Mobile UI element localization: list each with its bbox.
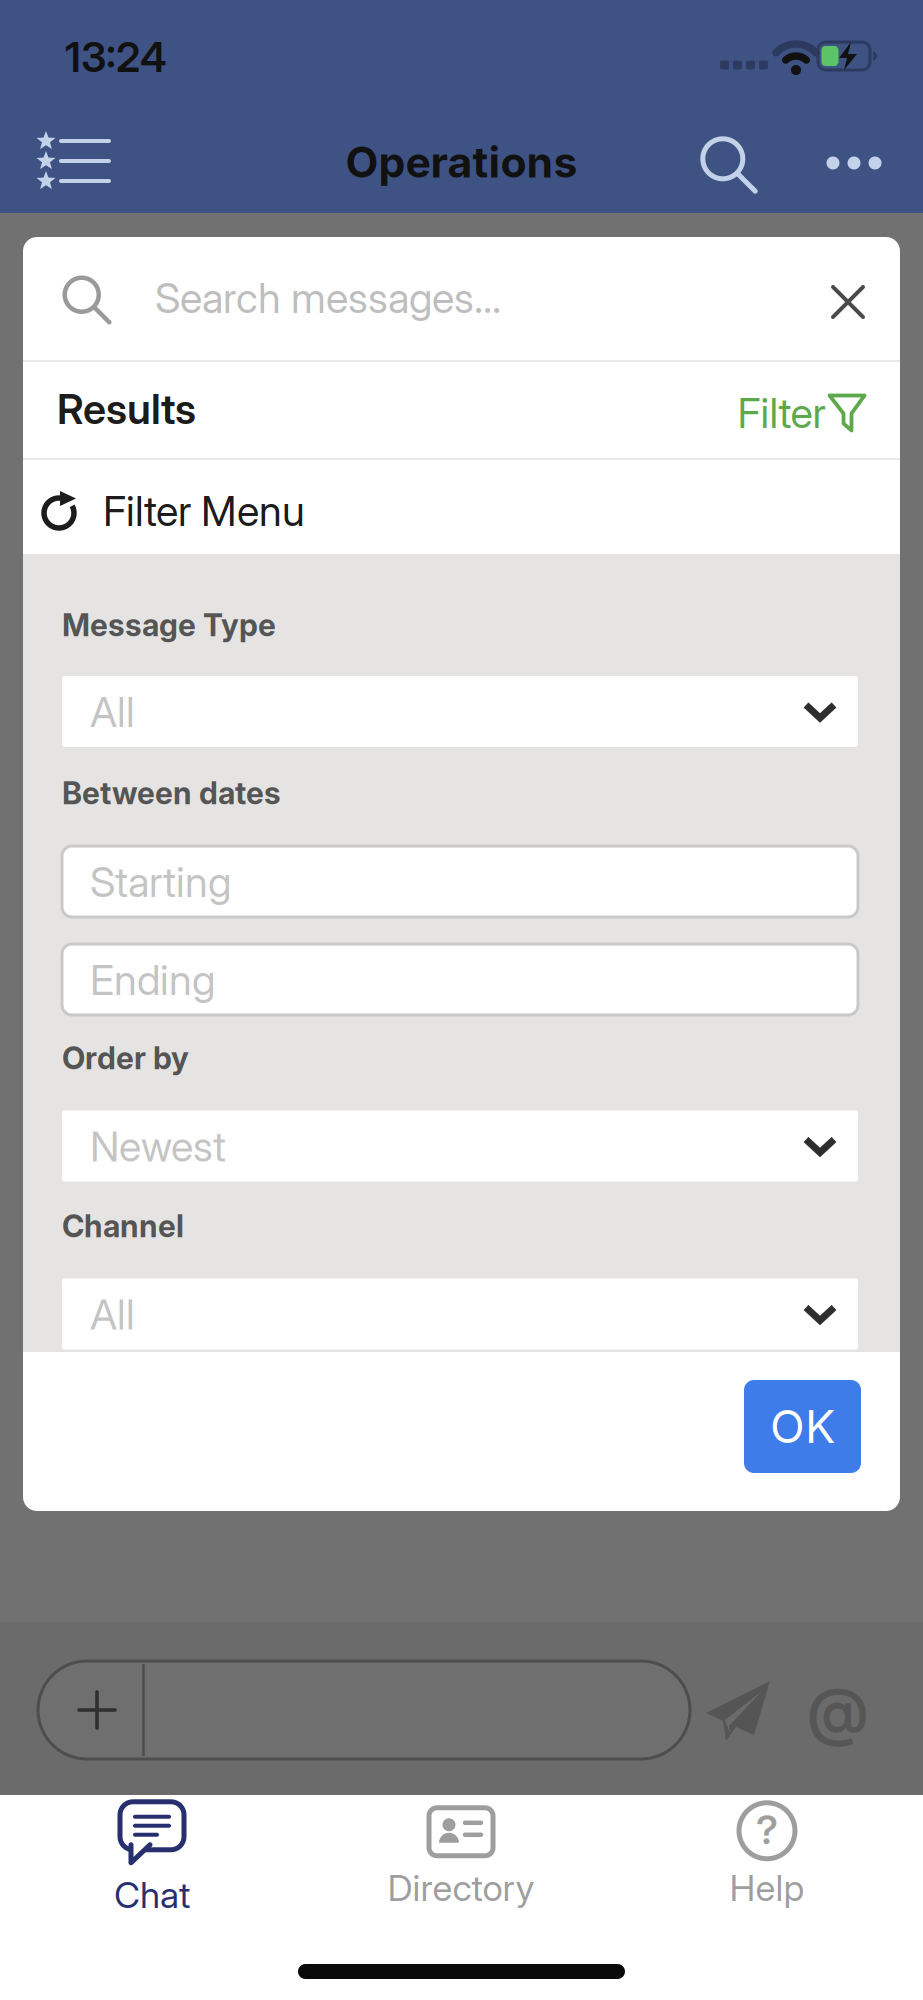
staticText: 13:24 [65,33,167,81]
staticText: Filter Menu [103,487,305,535]
staticText: ? [756,1806,778,1853]
button[interactable]: Search messages [23,237,783,359]
staticText: Directory [387,1867,534,1909]
button[interactable]: OK [744,1380,861,1473]
button[interactable]: Mention [806,1674,869,1748]
button[interactable]: Filter [737,389,866,437]
button[interactable]: Add attachment [77,1690,117,1730]
button[interactable]: Newest [62,1110,858,1181]
button[interactable]: ? [729,1801,804,1909]
staticText: Starting [90,858,231,906]
staticText: Search messages... [155,274,501,322]
button[interactable]: More [826,156,881,169]
staticText: Between dates [62,775,281,811]
staticText: Ending [90,956,215,1004]
staticText: @ [806,1674,869,1748]
staticText: Operations [345,137,577,187]
staticText: Chat [114,1874,190,1916]
staticText: All [90,688,135,736]
staticText: Filter [737,389,825,437]
button[interactable]: Search [698,134,760,196]
staticText: OK [770,1400,835,1453]
button[interactable]: Message input [38,1661,690,1759]
button[interactable]: Ending [62,944,858,1015]
staticText: Results [57,385,196,433]
button[interactable]: All [62,1278,858,1349]
button[interactable]: Send [706,1681,770,1741]
button[interactable]: Directory [387,1807,534,1909]
button[interactable]: Chat [114,1800,190,1916]
staticText: Newest [90,1122,226,1171]
staticText: Help [729,1867,804,1909]
button[interactable]: Filter Menu [23,461,900,553]
staticText: Order by [62,1040,189,1076]
button[interactable]: Clear search [831,285,865,319]
button[interactable]: Starting [62,846,858,917]
button[interactable]: All [62,676,858,747]
staticText: Channel [62,1208,184,1244]
button[interactable]: Channels menu [35,132,111,192]
staticText: Message Type [62,607,276,643]
staticText: All [90,1290,135,1339]
